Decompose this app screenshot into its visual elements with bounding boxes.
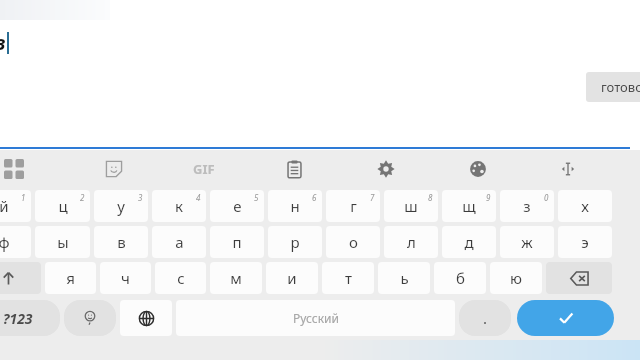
button[interactable]: готово [586, 72, 640, 102]
button[interactable]: г [326, 190, 380, 222]
staticText: 6 [312, 192, 317, 203]
staticText: о [349, 232, 358, 252]
staticText: г [350, 196, 357, 216]
button[interactable]: р [268, 226, 322, 258]
button[interactable]: ?123 [0, 300, 60, 336]
button[interactable]: Backspace [546, 262, 612, 294]
staticText: GIF [193, 160, 215, 178]
staticText: Русский [293, 310, 339, 326]
staticText: я [66, 268, 75, 288]
button[interactable]: у [94, 190, 148, 222]
button[interactable]: Clipboard [268, 150, 320, 188]
staticText: й [0, 196, 9, 216]
staticText: 9 [486, 192, 491, 203]
button[interactable]: Enter [517, 300, 614, 336]
button[interactable]: и [266, 262, 318, 294]
staticText: в [117, 232, 126, 252]
button[interactable]: ю [490, 262, 542, 294]
staticText: з [0, 30, 6, 56]
button[interactable]: ф [0, 226, 31, 258]
button[interactable]: с [155, 262, 206, 294]
staticText: ц [58, 196, 68, 216]
button[interactable]: н [268, 190, 322, 222]
button[interactable]: ц [35, 190, 90, 222]
button[interactable]: о [326, 226, 380, 258]
button[interactable]: Space [176, 300, 455, 336]
staticText: 1 [21, 192, 26, 203]
button[interactable]: е [210, 190, 264, 222]
button[interactable]: л [384, 226, 438, 258]
button[interactable]: э [558, 226, 612, 258]
staticText: 4 [196, 192, 201, 203]
staticText: с [177, 268, 185, 288]
staticText: н [290, 196, 300, 216]
staticText: ю [510, 268, 522, 288]
staticText: 2 [80, 192, 85, 203]
button[interactable]: а [152, 226, 206, 258]
staticText: 7 [370, 192, 375, 203]
staticText: п [232, 232, 242, 252]
staticText: е [233, 196, 242, 216]
button[interactable]: ч [100, 262, 151, 294]
button[interactable]: я [45, 262, 96, 294]
staticText: 5 [254, 192, 259, 203]
staticText: т [345, 268, 352, 288]
button[interactable]: ы [35, 226, 90, 258]
staticText: у [117, 196, 125, 216]
button[interactable]: Shift [0, 262, 41, 294]
button[interactable]: щ [442, 190, 496, 222]
staticText: э [581, 232, 589, 252]
staticText: ф [0, 232, 10, 252]
button[interactable]: Settings [360, 150, 412, 188]
button[interactable]: т [322, 262, 374, 294]
button[interactable]: в [94, 226, 148, 258]
button[interactable]: Text editing [542, 150, 594, 188]
button[interactable]: м [210, 262, 262, 294]
staticText: л [407, 232, 416, 252]
button[interactable]: Stickers [88, 150, 140, 188]
staticText: ш [404, 196, 418, 216]
staticText: 0 [544, 192, 549, 203]
button[interactable]: х [558, 190, 612, 222]
staticText: а [175, 232, 184, 252]
staticText: ч [121, 268, 130, 288]
button[interactable]: д [442, 226, 496, 258]
staticText: р [290, 232, 300, 252]
staticText: б [456, 268, 465, 288]
button[interactable]: ж [500, 226, 554, 258]
staticText: ы [57, 232, 69, 252]
staticText: . [483, 308, 488, 328]
button[interactable]: ь [378, 262, 430, 294]
button[interactable]: Apps [0, 150, 44, 188]
staticText: готово [601, 78, 640, 96]
staticText: ?123 [3, 309, 33, 328]
staticText: 3 [138, 192, 143, 203]
staticText: д [464, 232, 474, 252]
staticText: 8 [428, 192, 433, 203]
button[interactable]: й [0, 190, 31, 222]
staticText: и [287, 268, 297, 288]
staticText: ь [400, 268, 409, 288]
button[interactable]: ш [384, 190, 438, 222]
button[interactable]: Change language [120, 300, 172, 336]
staticText: к [175, 196, 183, 216]
staticText: х [581, 196, 589, 216]
button[interactable]: б [434, 262, 486, 294]
staticText: з [523, 196, 531, 216]
button[interactable]: Emoji [64, 300, 116, 336]
staticText: щ [462, 196, 476, 216]
button[interactable]: к [152, 190, 206, 222]
button[interactable]: Theme [452, 150, 504, 188]
staticText: ж [521, 232, 533, 252]
button[interactable]: GIF [178, 150, 230, 188]
button[interactable]: . [459, 300, 511, 336]
staticText: м [230, 268, 242, 288]
button[interactable]: з [500, 190, 554, 222]
button[interactable]: п [210, 226, 264, 258]
